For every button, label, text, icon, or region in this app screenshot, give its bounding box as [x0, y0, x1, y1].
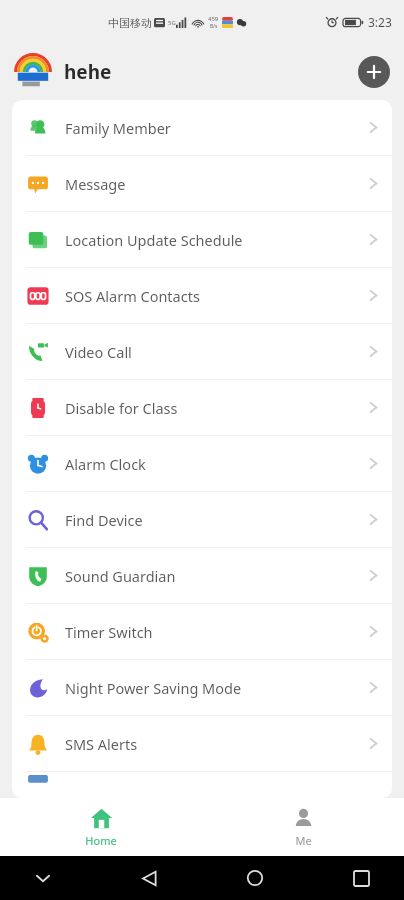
- staticText: Alarm Clock: [65, 454, 146, 474]
- button[interactable]: Alarm Clock: [12, 436, 392, 491]
- button[interactable]: Timer Switch: [12, 604, 392, 659]
- staticText: Location Update Schedule: [65, 230, 243, 250]
- staticText: SOS Alarm Contacts: [65, 286, 200, 306]
- staticText: 459: [208, 15, 219, 23]
- staticText: SMS Alerts: [65, 734, 138, 754]
- staticText: Timer Switch: [65, 622, 153, 642]
- button[interactable]: Home: [0, 798, 202, 856]
- button[interactable]: SOS Alarm Contacts: [12, 268, 392, 323]
- button[interactable]: Recents: [348, 865, 374, 891]
- button[interactable]: Family Member: [12, 100, 392, 155]
- button[interactable]: Find Device: [12, 492, 392, 547]
- button[interactable]: SMS Alerts: [12, 716, 392, 771]
- button[interactable]: Night Power Saving Mode: [12, 660, 392, 715]
- button[interactable]: Add device: [358, 56, 390, 88]
- staticText: Sound Guardian: [65, 566, 176, 586]
- button[interactable]: Back: [136, 865, 162, 891]
- button[interactable]: Me: [202, 798, 404, 856]
- staticText: Home: [85, 833, 117, 848]
- staticText: Night Power Saving Mode: [65, 678, 242, 698]
- staticText: 中国移动: [108, 16, 152, 30]
- button[interactable]: Disable for Class: [12, 380, 392, 435]
- button[interactable]: Message: [12, 156, 392, 211]
- button[interactable]: Sound Guardian: [12, 548, 392, 603]
- staticText: Video Call: [65, 342, 132, 362]
- button[interactable]: Location Update Schedule: [12, 212, 392, 267]
- staticText: 3:23: [368, 14, 392, 30]
- button[interactable]: [12, 772, 392, 798]
- staticText: Message: [65, 174, 126, 194]
- staticText: Me: [295, 833, 312, 848]
- staticText: 5G: [168, 19, 176, 27]
- staticText: Disable for Class: [65, 398, 178, 418]
- staticText: Find Device: [65, 510, 143, 530]
- button[interactable]: Home: [242, 865, 268, 891]
- button[interactable]: Hide keyboard: [30, 865, 56, 891]
- button[interactable]: Video Call: [12, 324, 392, 379]
- staticText: Family Member: [65, 118, 171, 138]
- staticText: hehe: [64, 59, 112, 85]
- staticText: B/s: [210, 23, 218, 30]
